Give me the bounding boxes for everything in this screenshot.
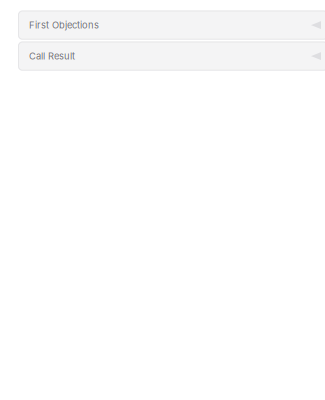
staticText: Call Result xyxy=(29,50,75,62)
staticText: First Objections xyxy=(29,19,99,31)
button[interactable]: First Objections xyxy=(18,10,325,40)
button[interactable]: Call Result xyxy=(18,41,325,71)
